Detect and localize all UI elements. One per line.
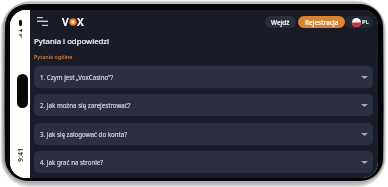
staticText: 1. Czym jest „VoxCasino”? xyxy=(40,73,114,81)
button[interactable]: Wejdź xyxy=(265,16,296,28)
staticText: 2. Jak można się zarejestrować? xyxy=(40,101,131,109)
button[interactable]: 1. Czym jest „VoxCasino”? xyxy=(34,66,373,88)
button[interactable]: 3. Jak się zalogować do konta? xyxy=(34,123,373,145)
button[interactable]: Menu xyxy=(37,15,48,27)
button[interactable]: Rejestracja xyxy=(298,16,345,28)
staticText: V xyxy=(62,15,69,29)
button[interactable]: Język: PL xyxy=(345,16,373,28)
staticText: Wejdź xyxy=(271,18,290,27)
button[interactable]: 2. Jak można się zarejestrować? xyxy=(34,94,373,116)
staticText: 3. Jak się zalogować do konta? xyxy=(40,130,128,138)
staticText: PL xyxy=(362,18,369,26)
staticText: X xyxy=(77,15,84,29)
staticText: Pytania ogólne xyxy=(34,53,73,60)
staticText: 4. Jak grać na stronie? xyxy=(40,158,104,166)
staticText: Rejestracja xyxy=(305,18,339,27)
staticText: Pytania i odpowiedzi xyxy=(34,36,110,47)
button[interactable]: 4. Jak grać na stronie? xyxy=(34,151,373,173)
staticText: 9:41 xyxy=(16,148,26,162)
